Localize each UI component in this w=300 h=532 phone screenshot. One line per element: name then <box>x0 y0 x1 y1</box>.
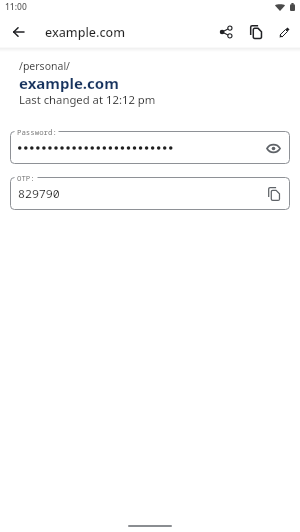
button[interactable]: Share <box>212 18 240 46</box>
staticText: 829790 <box>18 186 262 202</box>
button[interactable]: Copy one-time password <box>262 183 284 205</box>
staticText: example.com <box>45 24 126 41</box>
staticText: Password: <box>17 127 57 137</box>
staticText: OTP: <box>17 173 35 183</box>
button[interactable]: Back <box>5 19 31 45</box>
button[interactable]: Edit <box>271 18 299 46</box>
staticText: Last changed at 12:12 pm <box>19 92 156 107</box>
staticText: example.com <box>19 73 119 93</box>
staticText: /personal/ <box>19 59 70 73</box>
button[interactable]: Show password <box>262 137 284 159</box>
button[interactable]: Copy password <box>241 18 269 46</box>
staticText: 11:00 <box>5 1 27 13</box>
